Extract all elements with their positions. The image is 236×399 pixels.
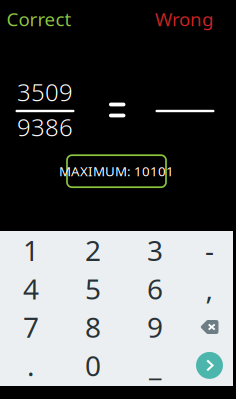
staticText: 4 <box>23 270 39 307</box>
button[interactable]: . <box>0 346 62 385</box>
staticText: . <box>27 347 35 384</box>
staticText: 6 <box>147 270 163 307</box>
button[interactable]: Correct <box>6 7 71 31</box>
button[interactable]: Submit <box>186 346 233 385</box>
button[interactable]: 9 <box>124 308 186 346</box>
staticText: 3 <box>147 232 163 269</box>
staticText: 2 <box>85 232 101 269</box>
button[interactable]: 8 <box>62 308 124 346</box>
staticText: 7 <box>23 308 39 346</box>
button[interactable]: 7 <box>0 308 62 346</box>
button[interactable]: 5 <box>62 269 124 308</box>
staticText: 1 <box>23 232 39 269</box>
button[interactable]: 1 <box>0 231 62 269</box>
staticText: - <box>205 232 214 269</box>
staticText: 8 <box>85 308 101 346</box>
button[interactable]: MAXIMUM: 10101 <box>67 155 166 187</box>
button[interactable]: , <box>186 269 233 308</box>
staticText: 0 <box>85 347 101 384</box>
staticText: _ <box>149 347 161 384</box>
staticText: Correct <box>6 7 71 31</box>
button[interactable]: 3 <box>124 231 186 269</box>
button[interactable]: - <box>186 231 233 269</box>
staticText: 9386 <box>17 111 73 143</box>
button[interactable]: 0 <box>62 346 124 385</box>
button[interactable]: 4 <box>0 269 62 308</box>
staticText: 5 <box>85 270 101 307</box>
staticText: 9 <box>147 308 163 346</box>
staticText: MAXIMUM: 10101 <box>59 162 174 180</box>
button[interactable]: 2 <box>62 231 124 269</box>
button[interactable]: 6 <box>124 269 186 308</box>
button[interactable]: Wrong <box>155 7 213 31</box>
staticText: Wrong <box>155 7 213 31</box>
button[interactable]: _ <box>124 346 186 385</box>
button[interactable]: Delete <box>186 308 233 346</box>
staticText: , <box>205 270 213 307</box>
staticText: 3509 <box>17 76 73 108</box>
staticText <box>182 111 188 143</box>
